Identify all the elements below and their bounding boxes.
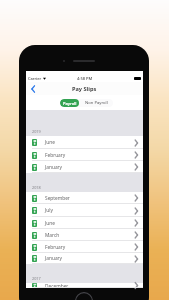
button[interactable]: Non Payroll xyxy=(79,99,113,107)
staticText: Pay Slips xyxy=(72,85,97,93)
staticText: Non Payroll xyxy=(85,100,108,106)
button[interactable]: September xyxy=(26,192,143,204)
staticText: January xyxy=(45,255,133,262)
staticText: 2019 xyxy=(32,129,41,134)
staticText: June xyxy=(45,139,133,146)
staticText: 4:58 PM xyxy=(77,76,93,81)
staticText: September xyxy=(45,195,133,202)
staticText: 2017 xyxy=(32,276,41,281)
button[interactable]: February xyxy=(26,149,143,161)
staticText: Carrier xyxy=(28,76,42,81)
staticText: June xyxy=(45,220,133,227)
staticText: December xyxy=(45,283,133,288)
button[interactable]: January xyxy=(26,161,143,173)
staticText: July xyxy=(45,207,133,214)
button[interactable]: March xyxy=(26,229,143,241)
staticText: March xyxy=(45,232,133,239)
button[interactable]: February xyxy=(26,241,143,253)
button[interactable]: December xyxy=(26,283,143,288)
button[interactable]: June xyxy=(26,136,143,149)
button[interactable]: Back xyxy=(28,84,38,94)
button[interactable]: July xyxy=(26,204,143,217)
staticText: January xyxy=(45,164,133,171)
staticText: Payroll xyxy=(63,101,77,106)
button[interactable]: Payroll xyxy=(60,99,79,107)
button[interactable]: January xyxy=(26,253,143,264)
staticText: 2018 xyxy=(32,185,41,190)
button[interactable]: June xyxy=(26,217,143,229)
staticText: February xyxy=(45,244,133,251)
staticText: February xyxy=(45,152,133,159)
